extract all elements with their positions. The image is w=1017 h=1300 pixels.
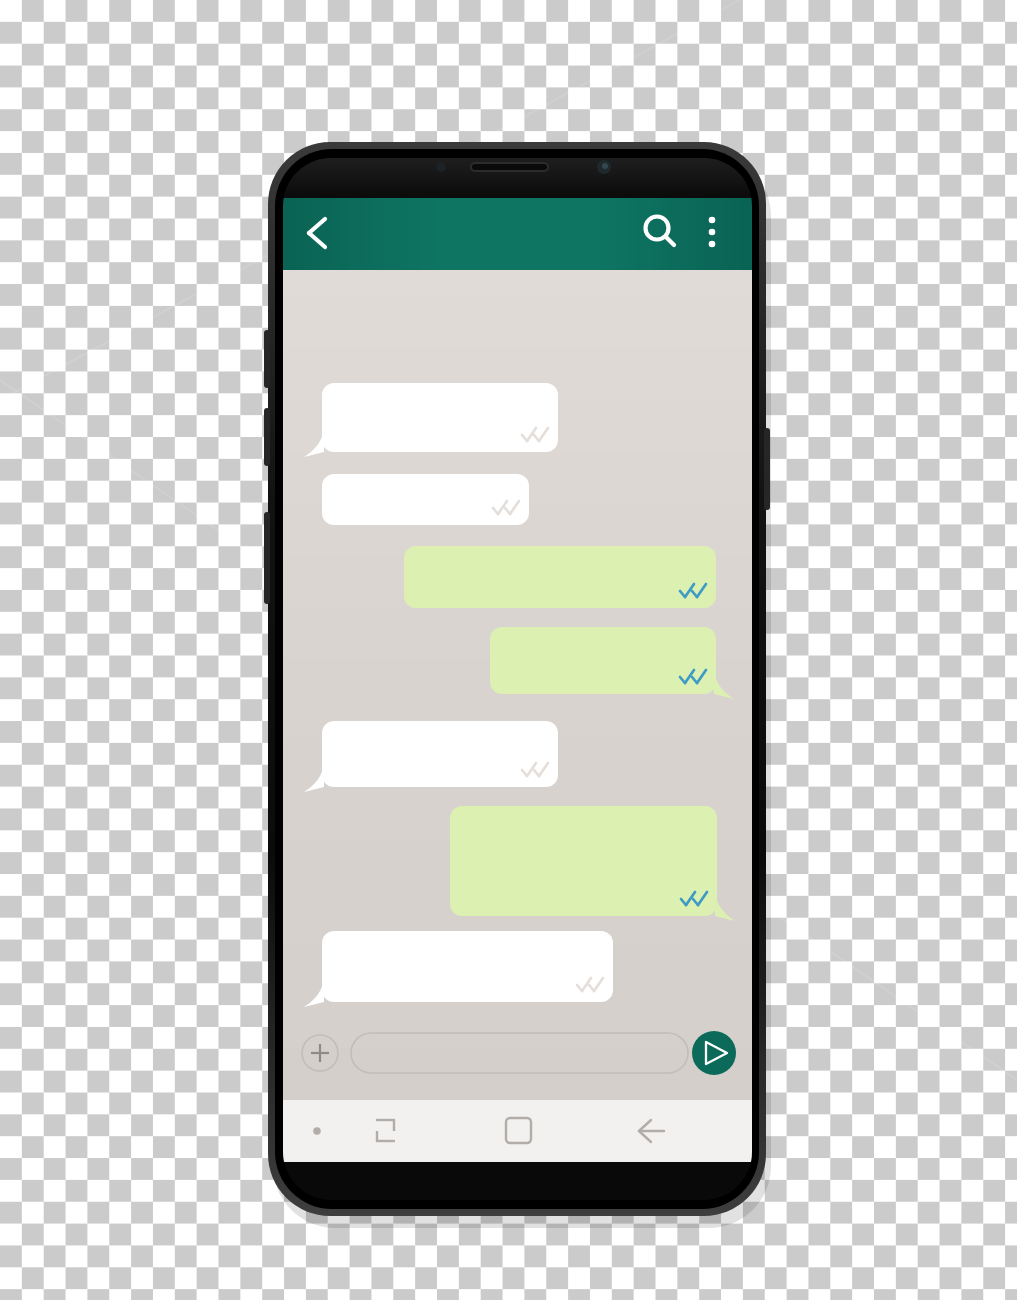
button[interactable]: More options: [690, 200, 738, 262]
button[interactable]: Recent apps: [360, 1104, 412, 1158]
button[interactable]: Attach: [298, 1031, 342, 1075]
button[interactable]: Navigate back: [624, 1104, 676, 1158]
button[interactable]: Send: [692, 1031, 736, 1075]
button[interactable]: Search: [628, 200, 686, 262]
button[interactable]: Back: [288, 196, 346, 270]
button[interactable]: Message input: [351, 1033, 688, 1073]
button[interactable]: Assistant: [292, 1104, 344, 1158]
button[interactable]: Home: [492, 1104, 544, 1158]
